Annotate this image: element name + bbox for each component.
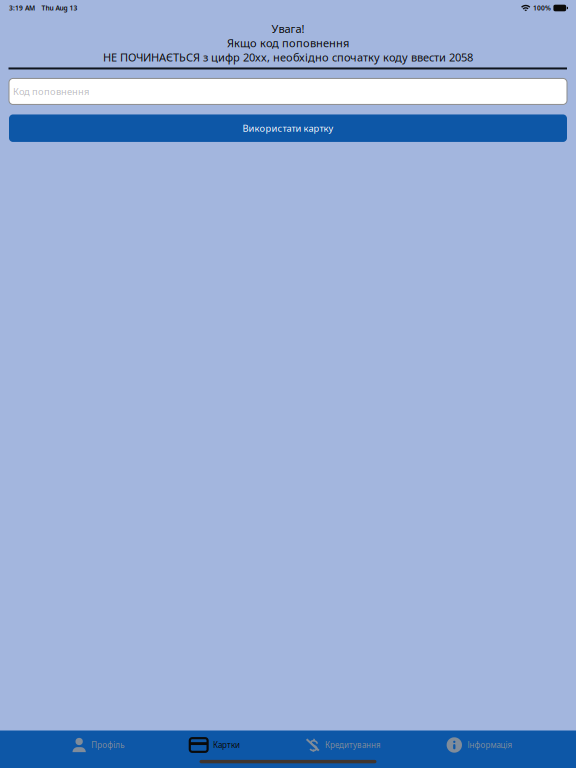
staticText: Картки bbox=[213, 740, 240, 750]
staticText: НЕ ПОЧИНАЄТЬСЯ з цифр 20хх, необхідно сп… bbox=[103, 50, 473, 64]
button[interactable]: Кредитування bbox=[306, 731, 381, 759]
button[interactable]: Інформація bbox=[447, 731, 512, 759]
staticText: 100% bbox=[533, 4, 551, 12]
staticText: Використати картку bbox=[242, 122, 333, 134]
staticText: Увага! bbox=[271, 21, 304, 36]
button[interactable]: Профіль bbox=[72, 731, 124, 759]
staticText: Якщо код поповнення bbox=[227, 36, 349, 50]
staticText: Thu Aug 13 bbox=[41, 4, 77, 12]
button[interactable]: Використати картку bbox=[9, 114, 567, 142]
staticText: 3:19 AM bbox=[9, 4, 35, 12]
staticText: Профіль bbox=[91, 740, 124, 750]
button[interactable]: Код поповнення bbox=[9, 78, 567, 104]
staticText: Код поповнення bbox=[13, 85, 89, 98]
button[interactable]: Картки bbox=[190, 731, 240, 759]
staticText: Інформація bbox=[467, 740, 512, 750]
staticText: Кредитування bbox=[325, 740, 381, 750]
